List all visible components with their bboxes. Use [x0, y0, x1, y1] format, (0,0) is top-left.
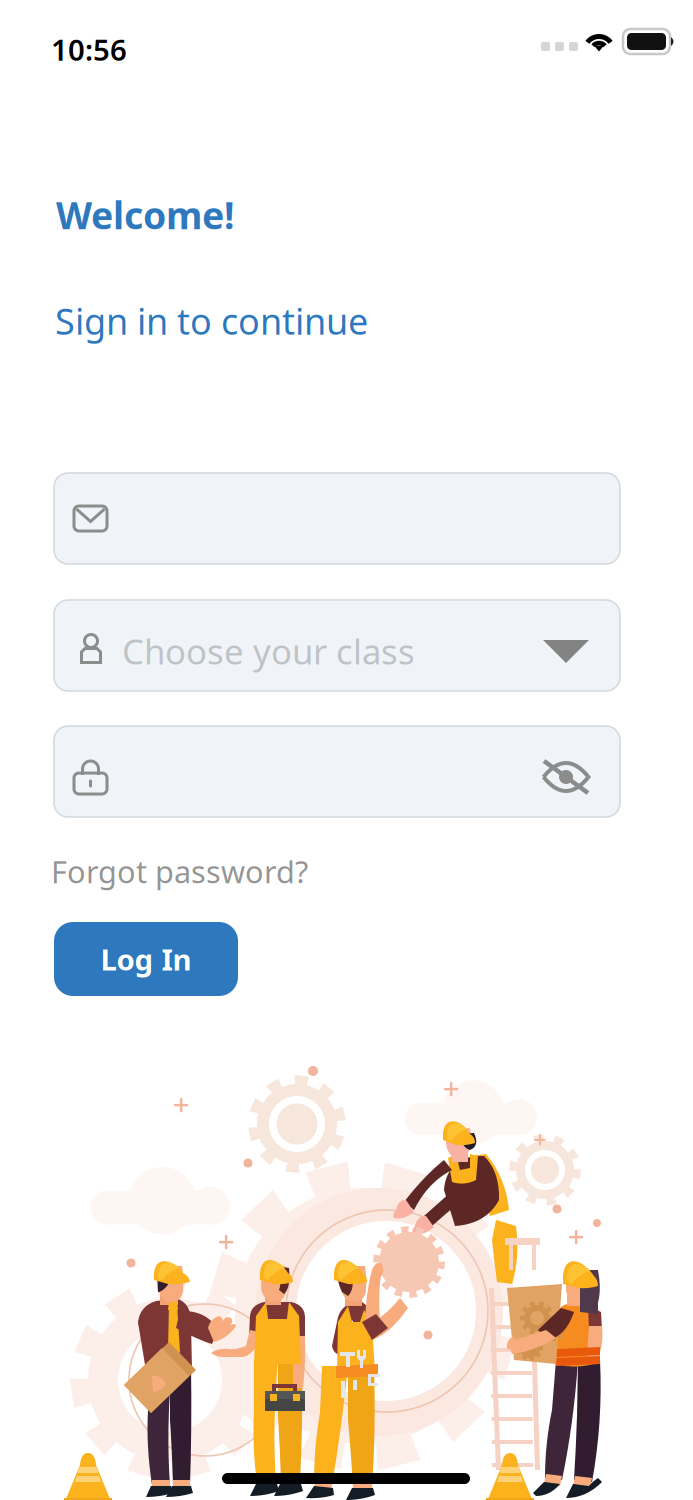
staticText: 10:56: [51, 30, 127, 69]
button[interactable]: Choose your class: [54, 600, 620, 691]
button[interactable]: Forgot password?: [51, 851, 308, 892]
button[interactable]: Show password: [541, 758, 591, 796]
staticText: Forgot password?: [51, 851, 308, 892]
staticText: Log In: [100, 939, 191, 978]
staticText: Welcome!: [56, 190, 235, 240]
button[interactable]: Log In: [54, 922, 238, 996]
staticText: Sign in to continue: [55, 297, 368, 345]
staticText: Choose your class: [122, 628, 415, 674]
